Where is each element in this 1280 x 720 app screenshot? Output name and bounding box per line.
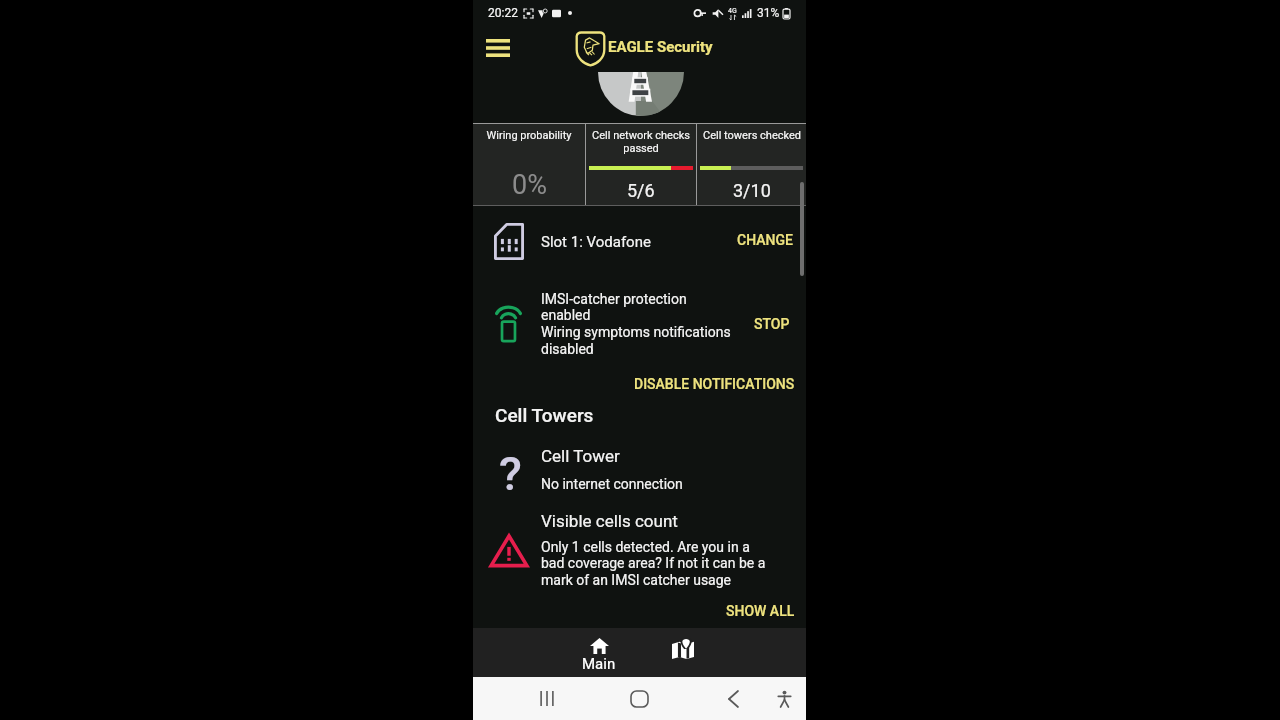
staticText: Visible cells count [541, 511, 678, 531]
staticText: Only 1 cells detected. Are you in a bad … [541, 539, 774, 589]
staticText: Cell Tower [541, 446, 620, 466]
staticText: Slot 1: Vodafone [541, 233, 651, 251]
button[interactable]: Recents [525, 677, 569, 720]
staticText: 20:22 [488, 6, 518, 20]
staticText: 31% [757, 6, 780, 20]
staticText: 0% [512, 169, 547, 201]
staticText: 4G [728, 7, 737, 15]
staticText: Cell network checks passed [592, 129, 690, 155]
button[interactable]: Main [557, 628, 641, 677]
button[interactable]: SHOW ALL [715, 597, 806, 625]
staticText: 3/10 [733, 180, 771, 201]
button[interactable]: Map [641, 628, 725, 677]
staticText: 5/6 [627, 180, 655, 201]
staticText: No internet connection [541, 476, 683, 492]
button[interactable]: Accessibility [762, 677, 806, 720]
button[interactable]: CHANGE [725, 223, 805, 257]
staticText: Main [582, 655, 616, 673]
button[interactable]: Slot 1: Vodafone [473, 208, 806, 272]
staticText: SHOW ALL [726, 603, 795, 619]
staticText: CHANGE [737, 232, 793, 248]
staticText: Wiring probability [486, 129, 572, 142]
button[interactable]: Home [617, 677, 661, 720]
staticText: ? [499, 446, 522, 492]
staticText: Cell towers checked [703, 129, 801, 142]
staticText: EAGLE Security [608, 38, 713, 56]
staticText: IMSI-catcher protection enabled Wiring s… [541, 291, 736, 358]
button[interactable]: ? [473, 440, 806, 498]
button[interactable]: Visible cells count [473, 508, 806, 598]
staticText: Cell Towers [495, 404, 594, 426]
button[interactable]: IMSI-catcher protection enabled Wiring s… [473, 288, 806, 360]
button[interactable]: STOP [746, 308, 798, 340]
button[interactable]: DISABLE NOTIFICATIONS [623, 370, 806, 398]
button[interactable]: Menu [481, 31, 515, 65]
staticText: STOP [754, 316, 790, 332]
button[interactable]: Back [711, 677, 755, 720]
staticText: DISABLE NOTIFICATIONS [634, 376, 795, 392]
